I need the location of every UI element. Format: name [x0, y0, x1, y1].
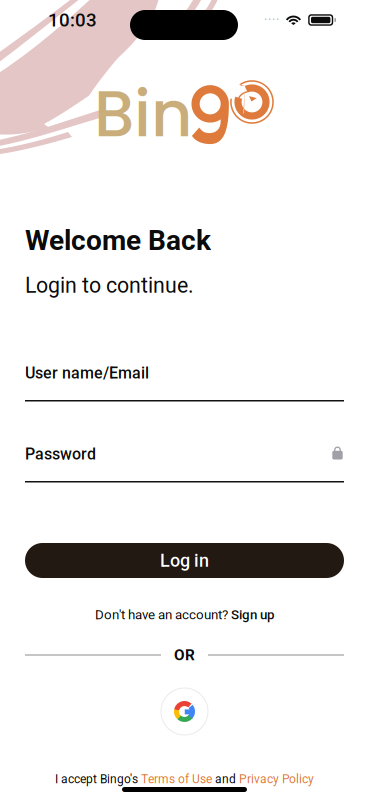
- button[interactable]: Privacy Policy: [239, 772, 314, 786]
- staticText: Privacy Policy: [239, 772, 314, 786]
- staticText: and: [212, 772, 239, 786]
- staticText: Terms of Use: [141, 772, 212, 786]
- staticText: I accept Bingo's: [55, 772, 141, 786]
- staticText: 10:03: [48, 9, 97, 31]
- staticText: OR: [174, 646, 195, 664]
- staticText: Welcome Back: [25, 224, 211, 257]
- button[interactable]: Terms of Use: [141, 772, 212, 786]
- staticText: User name/Email: [25, 364, 149, 382]
- button[interactable]: Sign in with Google: [161, 688, 208, 735]
- staticText: ····: [264, 11, 280, 29]
- button[interactable]: Sign up: [228, 607, 274, 623]
- staticText: Sign up: [228, 607, 274, 623]
- staticText: Bin: [94, 69, 193, 159]
- staticText: Don't have an account?: [95, 607, 228, 623]
- button[interactable]: Log in: [25, 543, 344, 578]
- staticText: Password: [25, 445, 96, 463]
- staticText: Log in: [160, 550, 209, 571]
- staticText: Login to continue.: [25, 273, 194, 298]
